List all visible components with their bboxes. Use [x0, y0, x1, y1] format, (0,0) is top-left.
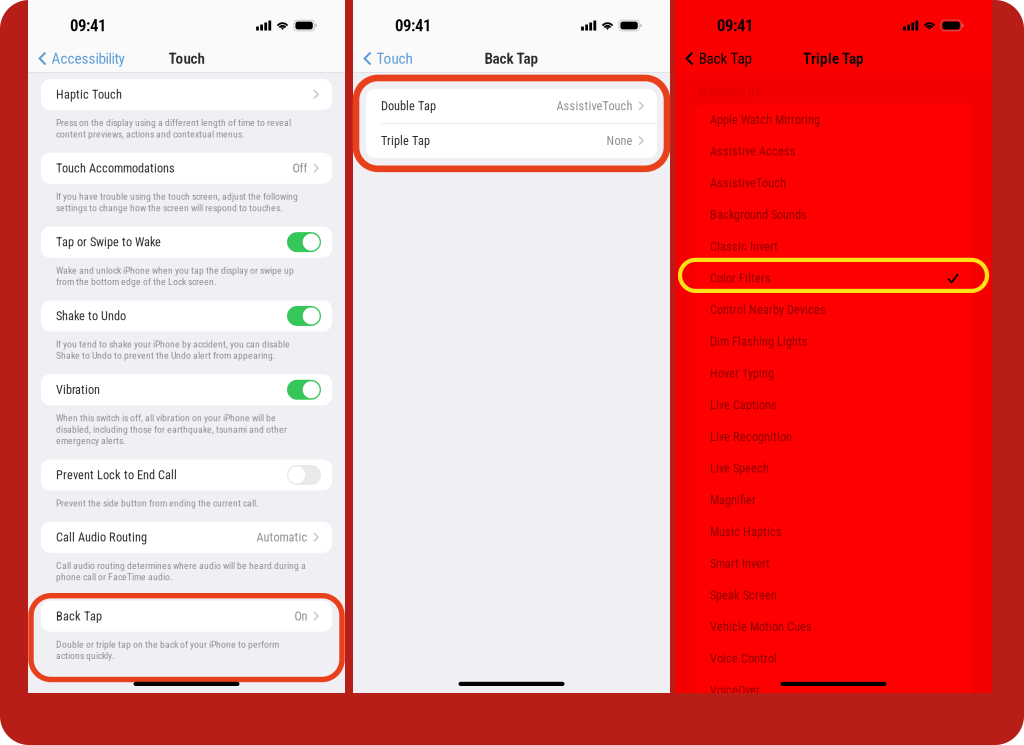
staticText: Dim Flashing Lights — [710, 334, 808, 349]
button[interactable]: Back Tap — [675, 44, 759, 73]
staticText: Smart Invert — [710, 556, 770, 571]
staticText: Double Tap — [381, 99, 436, 113]
button[interactable]: Magnifier — [695, 484, 972, 516]
staticText: Back Tap — [484, 50, 538, 67]
staticText: Magnifier — [710, 493, 756, 507]
staticText: VoiceOver — [710, 683, 760, 697]
staticText: Triple Tap — [803, 50, 864, 67]
button[interactable]: Classic Invert — [695, 231, 972, 262]
staticText: On — [294, 609, 307, 623]
staticText: If you tend to shake your iPhone by acci… — [56, 338, 290, 361]
staticText: Double or triple tap on the back of your… — [56, 639, 279, 661]
staticText: Off — [292, 161, 307, 175]
staticText: Call Audio Routing — [56, 530, 147, 545]
button[interactable]: Tap or Swipe to Wake — [41, 227, 332, 258]
button[interactable]: VoiceOver — [695, 674, 972, 706]
button[interactable]: Double Tap — [366, 89, 657, 123]
button[interactable]: Control Nearby Devices — [695, 294, 972, 326]
staticText: Live Captions — [710, 398, 777, 412]
staticText: Live Recognition — [710, 429, 792, 444]
staticText: Background Sounds — [710, 208, 807, 222]
button[interactable]: Live Recognition — [695, 421, 972, 453]
button[interactable]: Dim Flashing Lights — [695, 326, 972, 357]
button[interactable]: AssistiveTouch — [695, 167, 972, 199]
staticText: Prevent the side button from ending the … — [56, 497, 259, 509]
button[interactable]: Hover Typing — [695, 357, 972, 389]
staticText: Voice Control — [710, 651, 777, 666]
staticText: When this switch is off, all vibration o… — [56, 412, 287, 446]
button[interactable]: Live Captions — [695, 389, 972, 421]
staticText: Back Tap — [56, 609, 102, 623]
staticText: Automatic — [256, 530, 307, 545]
button[interactable]: Haptic Touch — [41, 79, 332, 110]
button[interactable]: Vibration — [41, 374, 332, 405]
button[interactable]: Prevent Lock to End Call — [41, 459, 332, 490]
staticText: Call audio routing determines where audi… — [56, 560, 306, 583]
button[interactable]: Triple Tap — [366, 124, 657, 158]
staticText: ACCESSIBILITY — [698, 87, 760, 99]
staticText: Tap or Swipe to Wake — [56, 235, 161, 249]
staticText: Music Haptics — [710, 525, 782, 539]
staticText: Touch — [376, 50, 412, 67]
staticText: Wake and unlock iPhone when you tap the … — [56, 265, 294, 287]
staticText: 09:41 — [717, 16, 753, 35]
staticText: Shake to Undo — [56, 309, 126, 323]
staticText: Speak Screen — [710, 588, 777, 602]
staticText: 09:41 — [395, 16, 431, 35]
staticText: Vehicle Motion Cues — [710, 620, 812, 634]
button[interactable]: Assistive Access — [695, 136, 972, 167]
staticText: AssistiveTouch — [710, 176, 786, 190]
staticText: Classic Invert — [710, 239, 778, 254]
button[interactable]: Back Tap — [41, 601, 332, 632]
staticText: Hover Typing — [710, 366, 774, 380]
staticText: Live Speech — [710, 461, 769, 476]
button[interactable]: Vehicle Motion Cues — [695, 611, 972, 643]
button[interactable]: Live Speech — [695, 453, 972, 484]
staticText: Touch Accommodations — [56, 161, 175, 175]
button[interactable]: Background Sounds — [695, 199, 972, 231]
staticText: Touch — [168, 50, 204, 67]
button[interactable]: Smart Invert — [695, 548, 972, 579]
staticText: Vibration — [56, 383, 100, 397]
button[interactable]: Voice Control — [695, 643, 972, 674]
staticText: Accessibility — [51, 50, 124, 67]
button[interactable]: Color Filters — [695, 262, 972, 294]
staticText: Control Nearby Devices — [710, 303, 826, 317]
button[interactable]: Speak Screen — [695, 579, 972, 611]
button[interactable]: Call Audio Routing — [41, 522, 332, 553]
staticText: Back Tap — [698, 50, 751, 67]
staticText: If you have trouble using the touch scre… — [56, 191, 298, 214]
staticText: None — [606, 134, 632, 148]
button[interactable]: Apple Watch Mirroring — [695, 104, 972, 136]
button[interactable]: Accessibility — [28, 44, 132, 73]
staticText: AssistiveTouch — [556, 99, 632, 113]
staticText: Triple Tap — [381, 134, 430, 148]
button[interactable]: Shake to Undo — [41, 300, 332, 331]
staticText: Press on the display using a different l… — [56, 117, 291, 140]
button[interactable]: Touch — [353, 44, 420, 73]
button[interactable]: Touch Accommodations — [41, 153, 332, 184]
staticText: Assistive Access — [710, 144, 796, 159]
staticText: Prevent Lock to End Call — [56, 468, 177, 482]
staticText: 09:41 — [70, 16, 106, 35]
staticText: Color Filters — [710, 271, 771, 285]
button[interactable]: Music Haptics — [695, 516, 972, 548]
staticText: Haptic Touch — [56, 87, 122, 102]
staticText: Apple Watch Mirroring — [710, 112, 820, 127]
